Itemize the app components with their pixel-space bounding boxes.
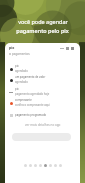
staticText: pix — [15, 64, 19, 68]
staticText: pagamentos — [12, 52, 30, 56]
staticText: pagamento programado — [15, 113, 47, 117]
staticText: você pode agendar — [18, 18, 68, 25]
button[interactable]: comprovante — [9, 98, 76, 107]
button[interactable]: um pagamento de valor — [9, 75, 76, 84]
button[interactable]: pix — [9, 87, 76, 96]
staticText: pix — [9, 45, 15, 50]
button[interactable]: pix — [9, 64, 76, 73]
staticText: confira o comprovante aqui — [15, 103, 50, 107]
button[interactable]: ver mais detalhes no app — [25, 123, 61, 127]
staticText: pagamento agendado hoje — [15, 92, 50, 96]
staticText: agendado — [15, 69, 28, 73]
staticText: pix — [15, 87, 19, 91]
staticText: agendado — [15, 80, 28, 84]
staticText: um pagamento de valor — [15, 75, 46, 79]
staticText: comprovante — [15, 98, 32, 102]
button[interactable]: pagamento programado — [9, 110, 76, 119]
staticText: pagamento pelo pix — [16, 27, 69, 34]
